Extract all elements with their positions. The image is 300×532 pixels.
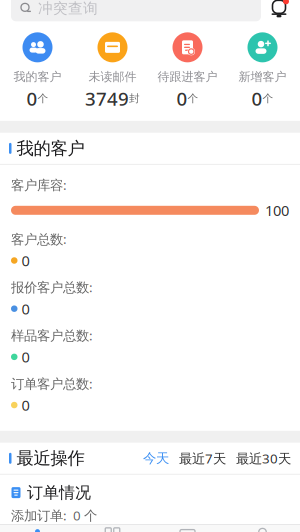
button[interactable]: 冲突查询 [11,0,261,21]
button[interactable]: 新增客户 [225,32,300,111]
staticText: 今天 [143,450,169,466]
button[interactable]: Notifications [269,0,289,18]
staticText: 0 [21,395,29,415]
button[interactable]: 最近30天 [236,449,291,467]
button[interactable]: 首页 [0,525,75,532]
staticText: 添加订单: 0 个 [11,506,97,524]
staticText: 最近30天 [236,449,291,467]
staticText: 客户总数: [11,230,67,248]
staticText: 客户库容: [11,176,67,194]
staticText: 订单客户总数: [11,375,93,392]
staticText: 封 [129,92,140,105]
staticText: 未读邮件 [88,69,136,84]
button[interactable]: 功能 [75,525,150,532]
staticText: 最近7天 [179,449,226,467]
staticText: 冲突查询 [38,0,98,17]
staticText: 3749 [85,86,129,111]
button[interactable]: 未读邮件 [75,32,150,111]
staticText: 个 [262,92,273,105]
staticText: 0 [26,86,37,111]
staticText: 最近操作 [16,448,84,469]
staticText: 订单情况 [27,483,91,502]
staticText: 个 [187,92,198,105]
staticText: 0 [21,347,29,367]
staticText: 我的客户 [16,138,84,159]
button[interactable]: 待跟进客户 [150,32,225,111]
button[interactable]: 最近7天 [179,449,226,467]
button[interactable]: 我的客户 [0,32,75,111]
button[interactable]: 邮件 [150,525,225,532]
staticText: 新增客户 [238,69,286,84]
staticText: 0 [21,299,29,318]
staticText: 0 [251,86,262,111]
staticText: 0 [21,251,29,270]
staticText: 样品客户总数: [11,326,93,344]
button[interactable]: 今天 [143,450,169,466]
button[interactable]: 我的 [225,525,300,532]
staticText: 100 [265,201,289,220]
staticText: 我的客户 [13,69,61,84]
staticText: 个 [37,92,48,105]
staticText: 报价客户总数: [11,278,93,296]
staticText: 待跟进客户 [157,69,217,84]
staticText: 0 [176,86,187,111]
